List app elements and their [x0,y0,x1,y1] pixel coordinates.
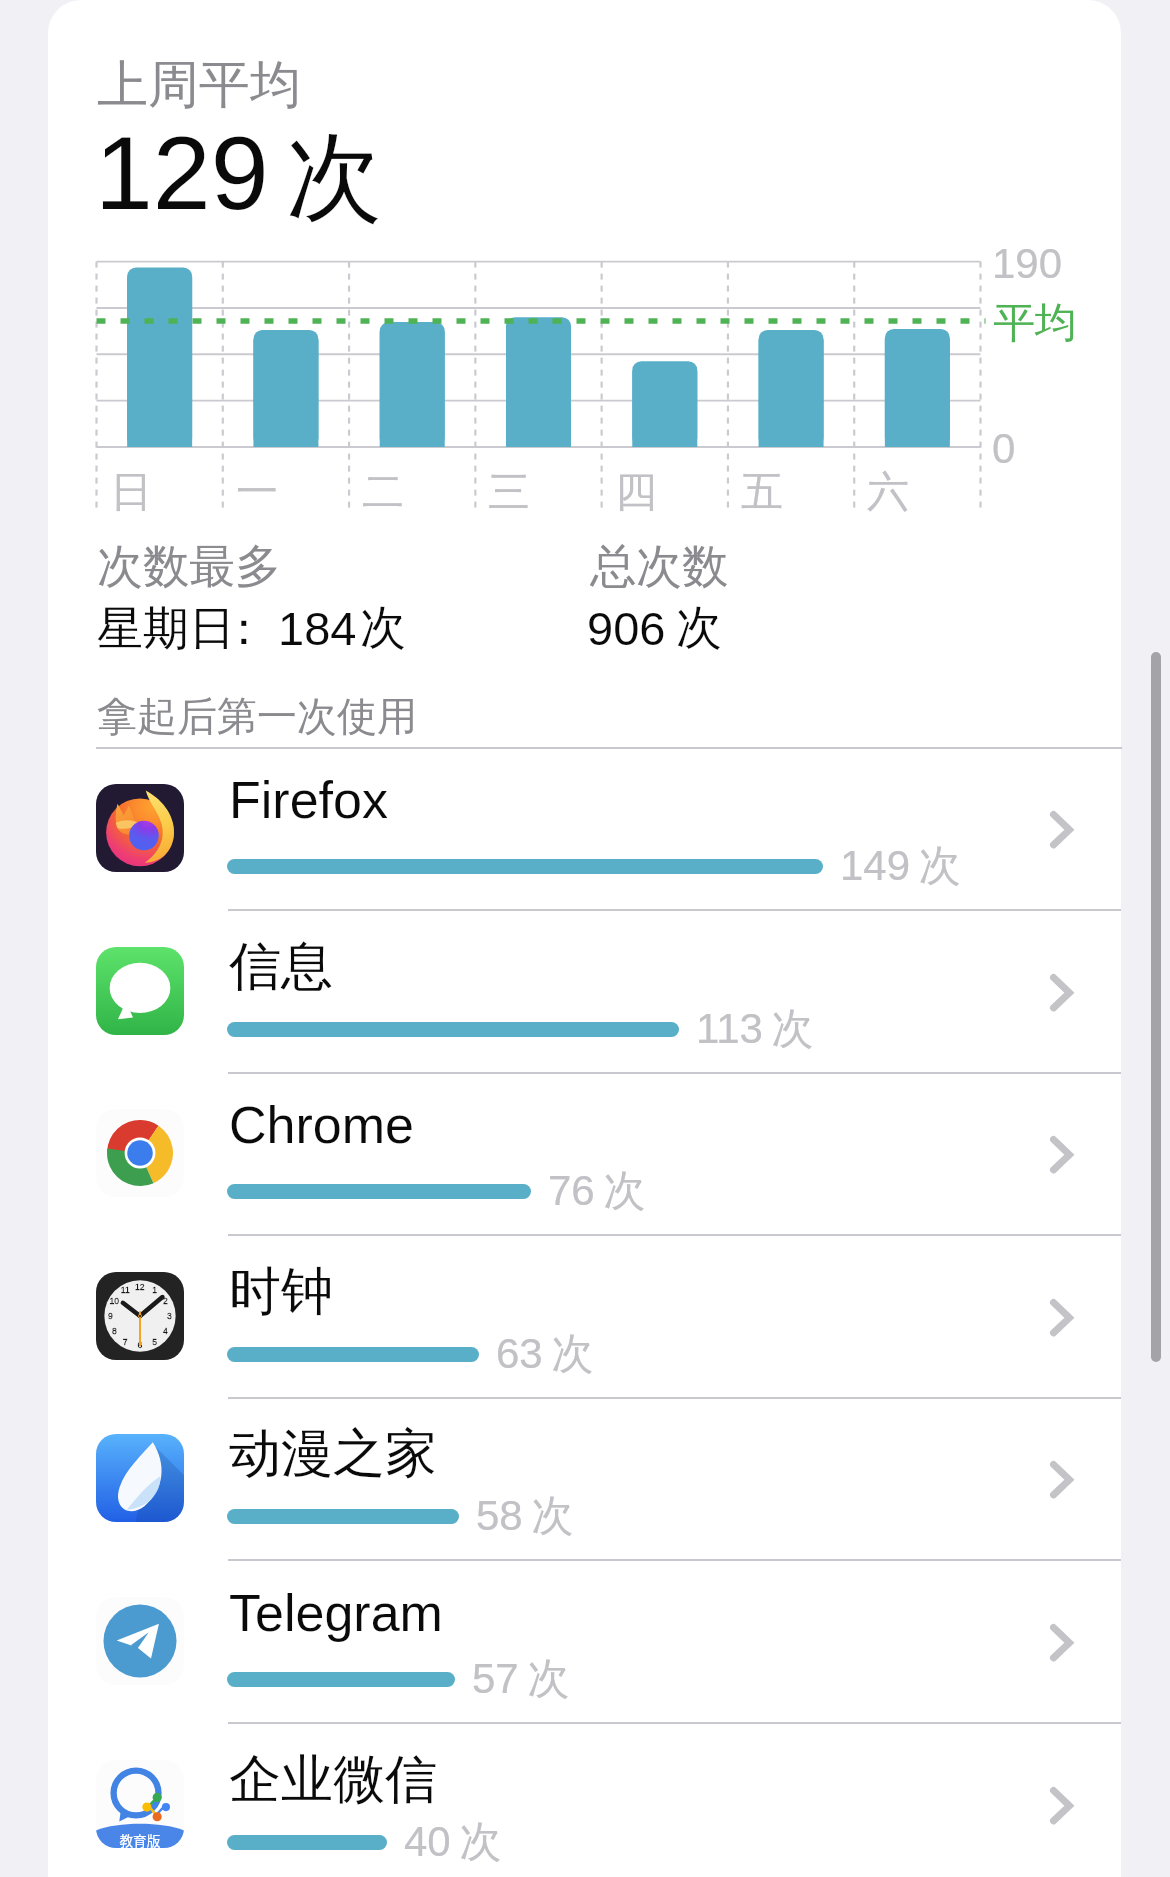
staticText: 三 [488,466,530,519]
staticText: 一 [236,466,278,519]
staticText: 总次数 [590,538,728,596]
staticText: 40 次 [404,1816,502,1869]
button[interactable]: Chrome [96,1072,1121,1234]
staticText: 113 次 [696,1003,814,1056]
staticText: 次 [676,599,722,657]
staticText: 190 [992,240,1063,287]
staticText: 二 [362,466,404,519]
other: Open 时钟 [1026,1283,1096,1353]
staticText: 57 次 [472,1653,570,1706]
staticText: 动漫之家 [229,1421,437,1487]
staticText: 次 [360,599,406,657]
staticText: 58 次 [476,1490,574,1543]
staticText: Telegram [229,1584,443,1642]
staticText: ： [221,600,267,658]
staticText: 上周平均 [97,53,301,117]
staticText: 信息 [229,934,333,1000]
staticText: 时钟 [229,1259,333,1325]
staticText: 四 [615,466,657,519]
staticText: 184 [278,602,357,655]
other: Open Firefox [1026,795,1096,865]
button[interactable]: Telegram [96,1560,1121,1722]
staticText: 平均 [993,297,1077,350]
other: Open 动漫之家 [1026,1445,1096,1515]
other: Open 企业微信 [1026,1771,1096,1841]
staticText: 六 [867,466,909,519]
staticText: 0 [992,425,1016,472]
staticText: 149 次 [840,840,961,893]
staticText: 次数最多 [97,538,281,596]
button[interactable]: 信息 [96,910,1121,1072]
staticText: 星期日 [97,600,235,658]
button[interactable]: 动漫之家 [96,1397,1121,1559]
staticText: 次 [286,118,382,239]
staticText: 五 [741,466,783,519]
staticText: 906 [587,602,666,655]
button[interactable]: 企业微信 [96,1723,1121,1877]
staticText: 日 [110,466,152,519]
staticText: 76 次 [548,1165,646,1218]
staticText: 拿起后第一次使用 [97,691,417,741]
staticText: 63 次 [496,1328,594,1381]
other: Open Chrome [1026,1120,1096,1190]
staticText: 129 [95,115,269,231]
staticText: Chrome [229,1096,414,1154]
button[interactable]: 时钟 [96,1235,1121,1397]
button[interactable]: Firefox [96,747,1121,909]
staticText: Firefox [229,771,388,829]
staticText: 企业微信 [229,1747,437,1813]
other: Open 信息 [1026,958,1096,1028]
other: Open Telegram [1026,1608,1096,1678]
